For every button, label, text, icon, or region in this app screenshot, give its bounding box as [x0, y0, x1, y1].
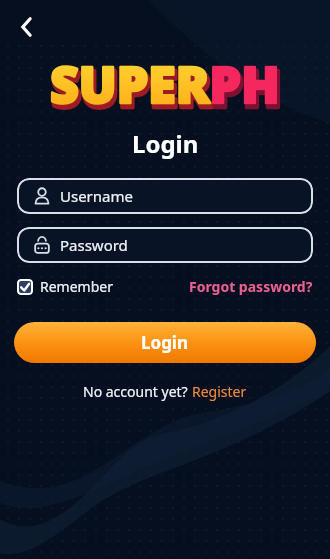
- button[interactable]: Forgot password?: [189, 277, 313, 296]
- button[interactable]: Register: [192, 382, 247, 401]
- staticText: No account yet?: [83, 382, 192, 401]
- button[interactable]: Password: [17, 227, 313, 263]
- button[interactable]: Username: [17, 178, 313, 214]
- staticText: Forgot password?: [189, 277, 313, 296]
- button[interactable]: [14, 14, 40, 40]
- staticText: Username: [60, 186, 133, 206]
- staticText: Register: [192, 382, 247, 401]
- staticText: SUPERPH: [50, 50, 280, 118]
- staticText: Login: [132, 127, 199, 160]
- staticText: Password: [60, 235, 128, 255]
- button[interactable]: Login: [14, 322, 316, 363]
- staticText: Login: [141, 331, 189, 354]
- staticText: SUPERPH: [52, 54, 282, 122]
- button[interactable]: Remember: [17, 277, 113, 296]
- staticText: SUPERPH: [52, 54, 282, 122]
- staticText: Remember: [40, 277, 113, 296]
- staticText: SUPERPH: [50, 50, 280, 118]
